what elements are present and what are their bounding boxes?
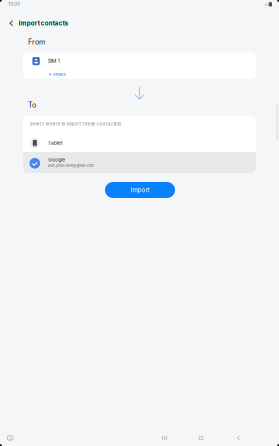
staticText: SIM 1 — [48, 58, 60, 64]
button[interactable]: Recent apps — [157, 432, 171, 444]
button[interactable]: Show navigation bar — [4, 433, 16, 445]
staticText: 4 contacts — [48, 72, 66, 77]
button[interactable]: SIM 1 — [23, 52, 256, 79]
button[interactable]: Home — [195, 432, 207, 444]
staticText: 10:00 — [8, 1, 20, 7]
button[interactable]: Back — [232, 432, 244, 444]
button[interactable]: Tablet — [23, 132, 256, 152]
staticText: Google — [48, 157, 65, 163]
staticText: Select where to import these contacts to… — [29, 121, 122, 127]
staticText: alan.jones.wen@gmail.com — [48, 163, 94, 168]
staticText: Import — [130, 186, 149, 194]
button[interactable]: Back — [4, 15, 18, 31]
button[interactable]: Google — [23, 152, 256, 173]
staticText: From — [28, 37, 45, 46]
staticText: Import contacts — [19, 20, 68, 27]
staticText: Tablet — [48, 140, 63, 146]
button[interactable]: Import — [105, 182, 175, 198]
staticText: To — [28, 100, 36, 109]
